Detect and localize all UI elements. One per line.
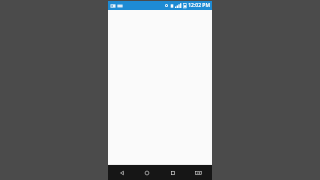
button[interactable]: Home [136, 165, 158, 180]
staticText: 12:02 PM [188, 2, 210, 9]
button[interactable]: Back [111, 165, 133, 180]
button[interactable]: Screenshot [187, 165, 209, 180]
button[interactable]: Recent apps [162, 165, 184, 180]
